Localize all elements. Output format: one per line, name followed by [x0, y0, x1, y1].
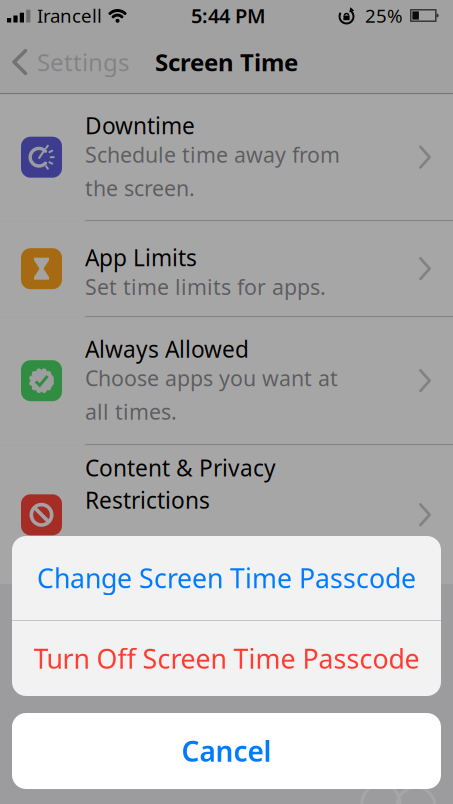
staticText: Choose apps you want at all times. — [85, 364, 338, 426]
button[interactable]: Content & Privacy — [0, 445, 453, 584]
button[interactable]: App Limits — [0, 221, 453, 316]
staticText: Restrictions — [85, 485, 210, 515]
staticText: 5:44 PM — [191, 2, 266, 29]
button[interactable]: Cancel — [12, 713, 441, 789]
staticText: Content & Privacy — [85, 453, 276, 483]
staticText: Always Allowed — [85, 334, 249, 364]
staticText: App Limits — [85, 242, 197, 273]
staticText: 25% — [365, 3, 403, 28]
button[interactable]: Always Allowed — [0, 317, 453, 444]
staticText: Settings — [37, 46, 129, 78]
staticText: Downtime — [85, 110, 195, 140]
button[interactable]: Settings — [0, 46, 129, 78]
staticText: Turn Off Screen Time Passcode — [33, 641, 419, 676]
staticText: Change Screen Time Passcode — [37, 560, 416, 596]
button[interactable]: Change Screen Time Passcode — [12, 536, 441, 620]
button[interactable]: Downtime — [0, 94, 453, 220]
staticText: Set time limits for apps. — [85, 273, 326, 301]
staticText: Cancel — [181, 732, 271, 770]
staticText: Screen Time — [155, 46, 298, 78]
staticText: Irancell — [37, 3, 102, 28]
staticText: Schedule time away from the screen. — [85, 140, 340, 202]
button[interactable]: Turn Off Screen Time Passcode — [12, 621, 441, 696]
